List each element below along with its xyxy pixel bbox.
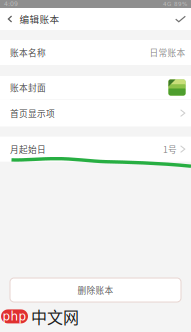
staticText: php xyxy=(2,309,26,323)
button[interactable]: Back xyxy=(0,8,19,30)
staticText: 1号 xyxy=(163,143,177,155)
staticText: 编辑账本 xyxy=(19,12,59,26)
staticText: 89% xyxy=(174,1,187,7)
button[interactable]: 账本封面 xyxy=(0,76,191,99)
staticText: 月起始日 xyxy=(10,143,46,155)
staticText: 首页显示项 xyxy=(10,107,55,119)
button[interactable]: 删除账本 xyxy=(10,278,181,302)
staticText: 4G xyxy=(163,1,171,7)
staticText: 账本封面 xyxy=(10,81,46,94)
staticText: 中文网 xyxy=(31,305,79,328)
staticText: 4:09 xyxy=(4,0,18,7)
button[interactable]: 首页显示项 xyxy=(0,100,191,127)
staticText: 日常账本 xyxy=(149,46,185,59)
staticText: 删除账本 xyxy=(77,284,113,296)
button[interactable]: Save xyxy=(170,8,191,30)
button[interactable]: 月起始日 xyxy=(0,137,191,162)
button[interactable]: 账本名称 xyxy=(0,40,191,65)
staticText: 账本名称 xyxy=(10,46,46,59)
